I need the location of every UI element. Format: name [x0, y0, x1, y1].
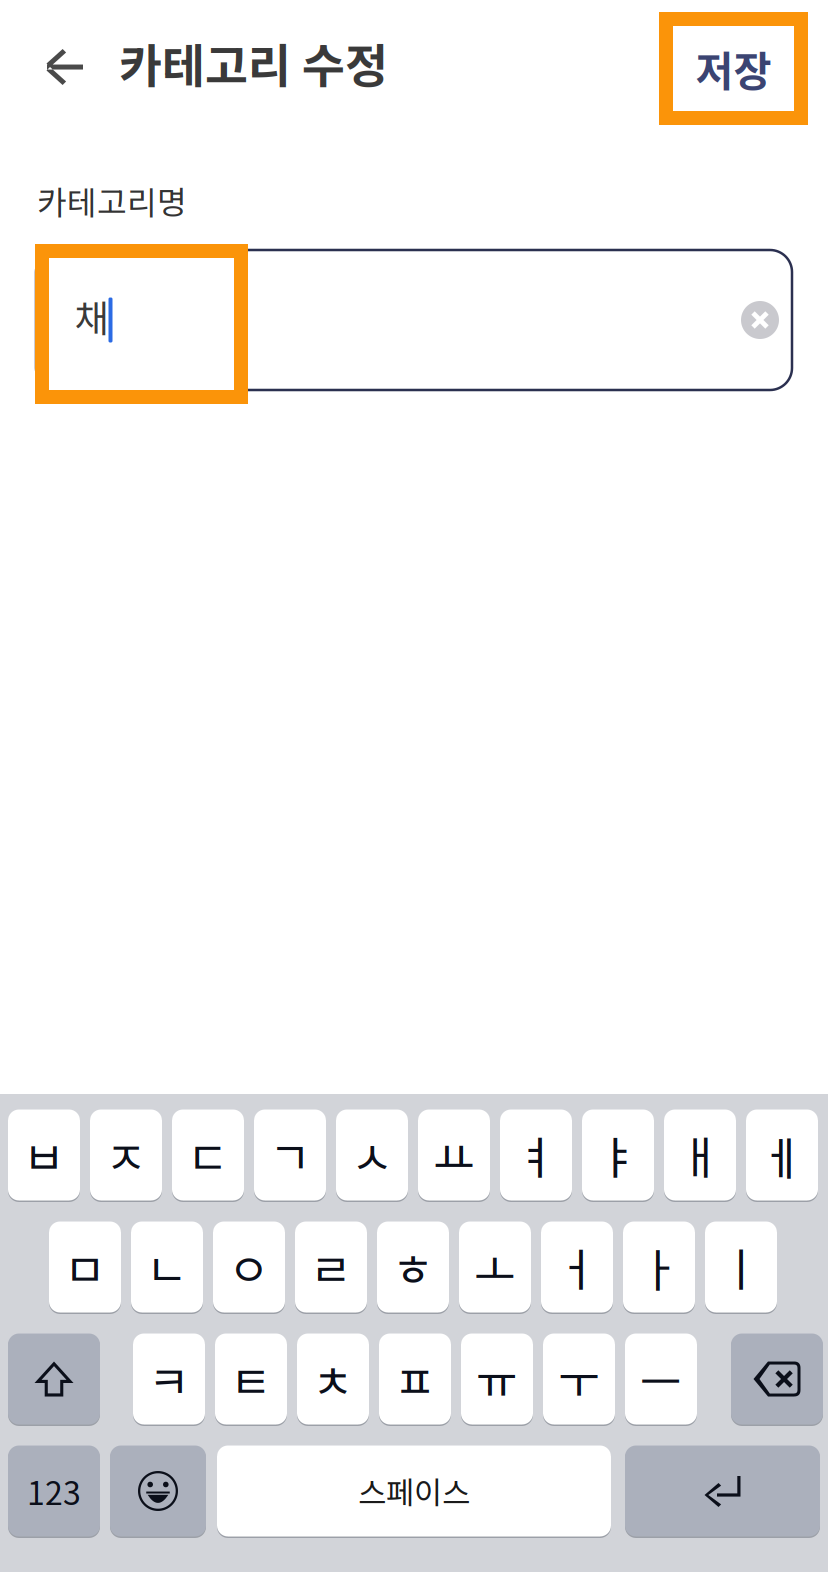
staticText: ㅣ	[720, 1234, 762, 1300]
staticText: ㅍ	[394, 1346, 436, 1412]
button[interactable]: ㅛ	[418, 1108, 490, 1202]
staticText: ㅇ	[228, 1234, 270, 1300]
button[interactable]: ㅜ	[543, 1332, 615, 1426]
staticText: ㅑ	[597, 1122, 639, 1188]
staticText: 저장	[695, 39, 771, 98]
staticText: 123	[27, 1468, 81, 1514]
staticText: ㅌ	[230, 1346, 272, 1412]
button[interactable]: ㅑ	[582, 1108, 654, 1202]
button[interactable]: ㄱ	[254, 1108, 326, 1202]
button[interactable]	[731, 1332, 823, 1426]
button[interactable]: ㅐ	[664, 1108, 736, 1202]
staticText: ㅊ	[312, 1346, 354, 1412]
button[interactable]: ㅊ	[297, 1332, 369, 1426]
button[interactable]: 123	[8, 1444, 100, 1538]
button[interactable]: 저장	[659, 12, 808, 125]
button[interactable]: ㅗ	[459, 1220, 531, 1314]
staticText: ㅐ	[679, 1122, 721, 1188]
button[interactable]: ㄴ	[131, 1220, 203, 1314]
staticText: ㅅ	[351, 1122, 393, 1188]
staticText: ㅗ	[474, 1234, 516, 1300]
staticText: ㅈ	[105, 1122, 147, 1188]
staticText: 카테고리 수정	[119, 29, 388, 97]
staticText: 채	[74, 289, 108, 343]
staticText: ㄴ	[146, 1234, 188, 1300]
button[interactable]: ㅡ	[625, 1332, 697, 1426]
button[interactable]: ㅓ	[541, 1220, 613, 1314]
staticText: ㅁ	[64, 1234, 106, 1300]
button[interactable]: 스페이스	[217, 1444, 611, 1538]
button[interactable]: ㅣ	[705, 1220, 777, 1314]
button[interactable]: ㅋ	[133, 1332, 205, 1426]
staticText: 카테고리명	[37, 177, 187, 224]
staticText: ㅜ	[558, 1346, 600, 1412]
button[interactable]: ㄷ	[172, 1108, 244, 1202]
button[interactable]: ㅎ	[377, 1220, 449, 1314]
button[interactable]: ㅔ	[746, 1108, 818, 1202]
staticText: ㅂ	[23, 1122, 65, 1188]
button[interactable]	[8, 1332, 100, 1426]
staticText: ㅠ	[476, 1346, 518, 1412]
button[interactable]: ㄹ	[295, 1220, 367, 1314]
button[interactable]: ㅂ	[8, 1108, 80, 1202]
button[interactable]: ㅏ	[623, 1220, 695, 1314]
button[interactable]: Clear text	[741, 301, 779, 339]
staticText: ㅡ	[640, 1346, 682, 1412]
button[interactable]: ㅁ	[49, 1220, 121, 1314]
staticText: ㅛ	[433, 1122, 475, 1188]
button[interactable]: ㅅ	[336, 1108, 408, 1202]
button[interactable]: ㅍ	[379, 1332, 451, 1426]
staticText: ㅋ	[148, 1346, 190, 1412]
staticText: ㅓ	[556, 1234, 598, 1300]
staticText: ㄱ	[269, 1122, 311, 1188]
staticText: ㅔ	[761, 1122, 803, 1188]
button[interactable]: ㅌ	[215, 1332, 287, 1426]
button[interactable]: Back	[26, 29, 102, 105]
staticText: ㅏ	[638, 1234, 680, 1300]
button[interactable]: ㅈ	[90, 1108, 162, 1202]
staticText: ㅎ	[392, 1234, 434, 1300]
button[interactable]	[110, 1444, 206, 1538]
button[interactable]: ㅕ	[500, 1108, 572, 1202]
staticText: ㅕ	[515, 1122, 557, 1188]
button[interactable]: ㅇ	[213, 1220, 285, 1314]
button[interactable]	[625, 1444, 820, 1538]
staticText: ㄷ	[187, 1122, 229, 1188]
button[interactable]: ㅠ	[461, 1332, 533, 1426]
staticText: 스페이스	[358, 1469, 470, 1513]
staticText: ㄹ	[310, 1234, 352, 1300]
